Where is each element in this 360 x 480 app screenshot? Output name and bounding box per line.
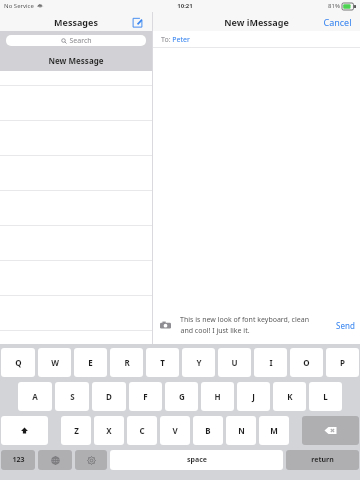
staticText: G (179, 391, 185, 402)
button[interactable]: L (309, 382, 342, 411)
button[interactable]: Z (61, 416, 91, 445)
staticText: E (88, 357, 93, 368)
staticText: S (70, 391, 75, 402)
staticText: New Message (48, 55, 104, 66)
staticText: B (205, 425, 211, 436)
staticText: T (160, 357, 165, 368)
button[interactable]: C (127, 416, 157, 445)
staticText: return (311, 455, 334, 465)
staticText: 123 (12, 455, 25, 465)
staticText: Q (15, 357, 22, 368)
button[interactable]: New Message (0, 49, 152, 71)
staticText: W (51, 357, 59, 368)
staticText: C (139, 425, 145, 436)
button[interactable]: space (110, 450, 283, 470)
button[interactable]: Backspace (302, 416, 359, 445)
button[interactable] (0, 120, 152, 155)
staticText: H (214, 391, 221, 402)
button[interactable]: F (129, 382, 162, 411)
button[interactable] (0, 190, 152, 225)
button[interactable]: A (18, 382, 52, 411)
button[interactable]: E (74, 348, 107, 377)
button[interactable]: P (326, 348, 359, 377)
staticText: I (269, 357, 273, 368)
button[interactable]: Q (1, 348, 35, 377)
staticText: F (143, 391, 148, 402)
staticText: U (231, 357, 238, 368)
button[interactable]: M (259, 416, 289, 445)
button[interactable] (0, 85, 152, 120)
button[interactable]: Compose new message (130, 15, 144, 29)
button[interactable]: B (193, 416, 223, 445)
staticText: L (323, 391, 328, 402)
staticText: This is new look of font keyboard, clean (180, 315, 309, 325)
staticText: Send (336, 320, 355, 331)
staticText: A (32, 391, 38, 402)
staticText: 81% (328, 2, 340, 10)
staticText: V (172, 425, 178, 436)
staticText: J (252, 391, 255, 402)
staticText: Search (69, 36, 92, 46)
staticText: To: Peter (161, 35, 190, 45)
staticText: X (106, 425, 112, 436)
button[interactable]: I (254, 348, 287, 377)
staticText: D (106, 391, 112, 402)
button[interactable]: Y (182, 348, 215, 377)
button[interactable]: V (160, 416, 190, 445)
staticText: P (340, 357, 345, 368)
staticText: Z (74, 425, 79, 436)
button[interactable]: Send (336, 320, 355, 331)
button[interactable]: S (55, 382, 89, 411)
staticText: K (287, 391, 293, 402)
staticText: M (270, 425, 278, 436)
staticText: Cancel (323, 16, 352, 28)
button[interactable]: H (201, 382, 234, 411)
staticText: Y (196, 357, 202, 368)
staticText: N (238, 425, 245, 436)
button[interactable]: R (110, 348, 143, 377)
button[interactable] (0, 330, 152, 344)
button[interactable] (0, 225, 152, 260)
button[interactable]: 123 (1, 450, 35, 470)
button[interactable] (0, 155, 152, 190)
staticText: New iMessage (224, 16, 289, 28)
button[interactable]: G (165, 382, 198, 411)
staticText: and cool! I just like it. (180, 326, 250, 336)
staticText: R (124, 357, 130, 368)
button[interactable]: Change keyboard language (38, 450, 72, 470)
button[interactable]: Keyboard settings (75, 450, 107, 470)
staticText: O (303, 357, 310, 368)
button[interactable]: Shift (1, 416, 48, 445)
button[interactable]: N (226, 416, 256, 445)
button[interactable]: U (218, 348, 251, 377)
button[interactable] (0, 295, 152, 330)
staticText: space (187, 455, 207, 465)
button[interactable] (0, 260, 152, 295)
staticText: Messages (54, 16, 98, 28)
button[interactable]: J (237, 382, 270, 411)
staticText: 10:21 (177, 2, 193, 10)
button[interactable]: T (146, 348, 179, 377)
button[interactable]: Take photo (158, 318, 172, 332)
button[interactable]: Cancel (323, 16, 352, 28)
button[interactable]: W (38, 348, 71, 377)
button[interactable]: Search (6, 35, 146, 46)
button[interactable]: O (290, 348, 323, 377)
button[interactable]: return (286, 450, 359, 470)
button[interactable]: K (273, 382, 306, 411)
button[interactable]: D (92, 382, 126, 411)
staticText: No Service (4, 2, 34, 10)
button[interactable]: This is new look of font keyboard, clean (180, 314, 328, 336)
button[interactable]: X (94, 416, 124, 445)
